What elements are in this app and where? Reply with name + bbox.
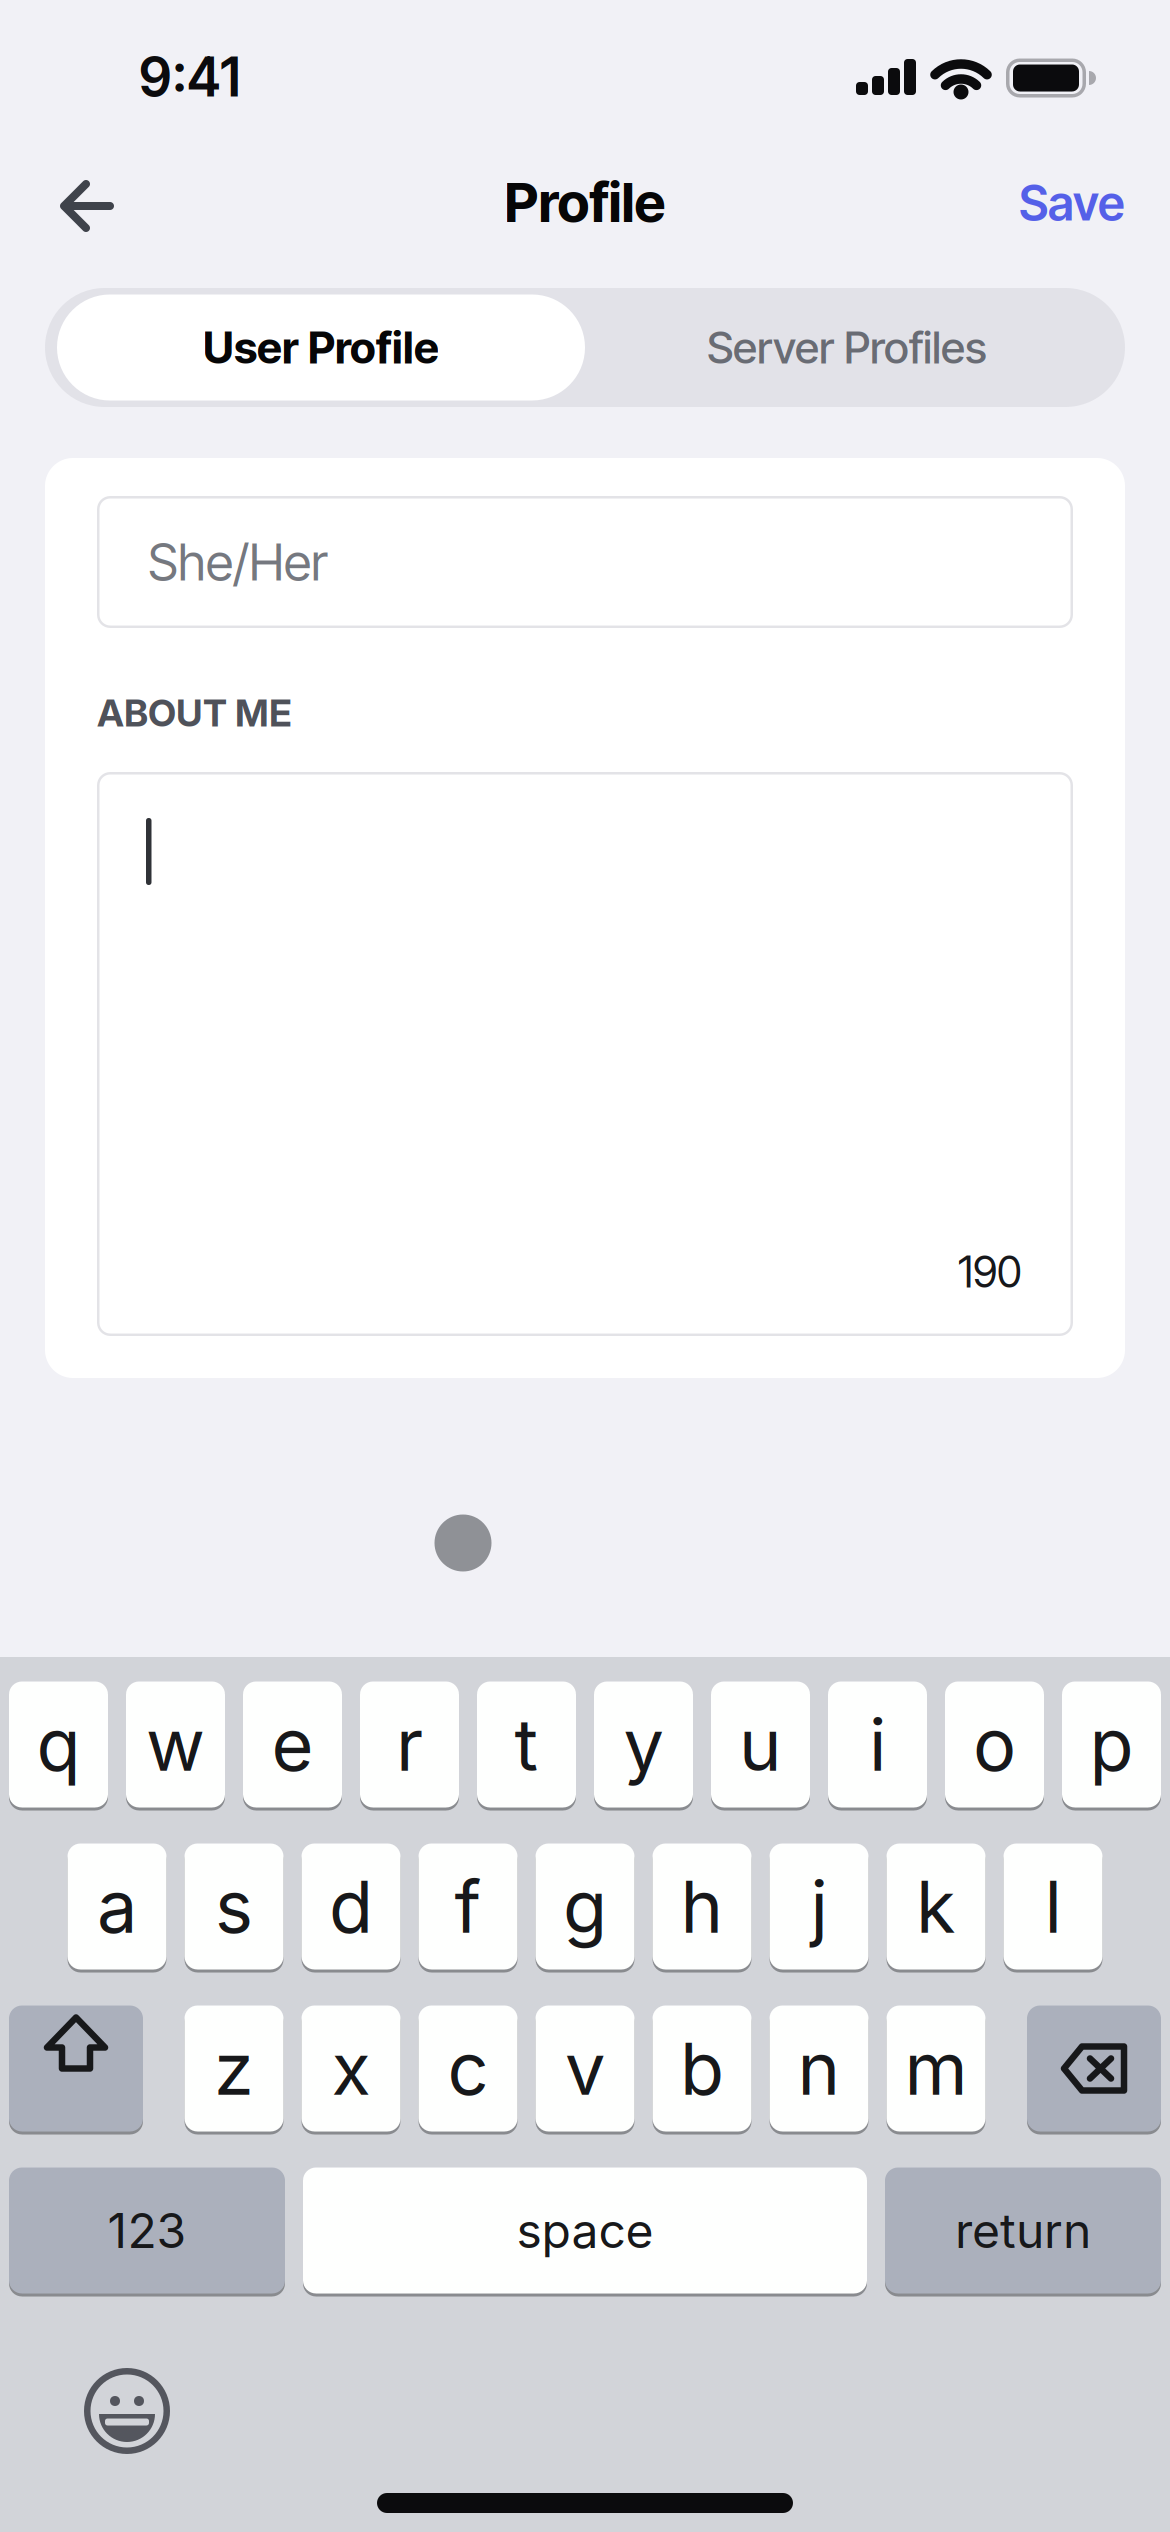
button[interactable]: t [477,1681,576,1810]
staticText: x [331,2025,370,2112]
staticText: n [797,2025,840,2112]
button[interactable]: Delete [1027,2005,1161,2134]
button[interactable]: She/Her [97,496,1073,628]
staticText: h [680,1863,723,1950]
button[interactable]: o [945,1681,1044,1810]
staticText: t [514,1701,538,1788]
button[interactable]: v [535,2005,634,2134]
staticText: k [916,1863,956,1950]
staticText: y [623,1701,663,1788]
button[interactable]: x [301,2005,400,2134]
button[interactable]: p [1062,1681,1161,1810]
staticText: 123 [107,2201,186,2260]
button[interactable]: Emoji [77,2361,177,2461]
staticText: User Profile [203,321,439,374]
staticText: s [215,1863,253,1950]
button[interactable]: c [418,2005,517,2134]
staticText: m [904,2025,967,2112]
staticText: 9:41 [139,45,241,109]
button[interactable]: Shift [9,2005,143,2134]
staticText: a [97,1863,137,1950]
button[interactable]: i [828,1681,927,1810]
button[interactable]: Server Profiles [0,0,1170,2532]
staticText: d [329,1863,373,1950]
button[interactable]: n [769,2005,868,2134]
button[interactable]: 123 [9,2167,285,2296]
staticText: z [214,2025,254,2112]
button[interactable]: a [67,1843,166,1972]
staticText: i [869,1701,886,1788]
staticText: return [955,2201,1091,2260]
button[interactable]: return [885,2167,1161,2296]
staticText: f [454,1863,481,1950]
button[interactable]: User Profile [57,294,585,400]
staticText: j [810,1863,827,1950]
button[interactable]: e [243,1681,342,1810]
button[interactable]: k [886,1843,985,1972]
button[interactable]: y [594,1681,693,1810]
staticText: Profile [504,169,665,235]
button[interactable]: space [303,2167,867,2296]
staticText: She/Her [148,531,327,593]
staticText: space [516,2201,653,2260]
staticText: q [36,1701,80,1788]
button[interactable]: q [9,1681,108,1810]
staticText: Server Profiles [707,321,987,374]
button[interactable]: d [301,1843,400,1972]
staticText: ABOUT ME [97,690,292,736]
button[interactable]: g [535,1843,634,1972]
staticText: c [447,2025,488,2112]
button[interactable]: s [184,1843,283,1972]
button[interactable]: z [184,2005,283,2134]
button[interactable]: f [418,1843,517,1972]
staticText: l [1044,1863,1061,1950]
staticText: v [565,2025,605,2112]
staticText: r [396,1701,423,1788]
button[interactable]: m [886,2005,985,2134]
button[interactable]: j [769,1843,868,1972]
button[interactable]: 190 [97,772,1073,1336]
staticText: w [146,1701,205,1788]
button[interactable]: h [652,1843,751,1972]
staticText: p [1089,1701,1133,1788]
button[interactable]: u [711,1681,810,1810]
button[interactable]: l [1003,1843,1102,1972]
staticText: b [680,2025,724,2112]
button[interactable]: b [652,2005,751,2134]
button[interactable]: r [360,1681,459,1810]
staticText: g [563,1863,607,1950]
staticText: u [739,1701,782,1788]
staticText: o [973,1701,1016,1788]
button[interactable]: w [126,1681,225,1810]
button[interactable]: Save [0,0,1170,2532]
staticText: Save [1019,174,1125,232]
staticText: 190 [958,1246,1022,1298]
staticText: e [271,1701,313,1788]
